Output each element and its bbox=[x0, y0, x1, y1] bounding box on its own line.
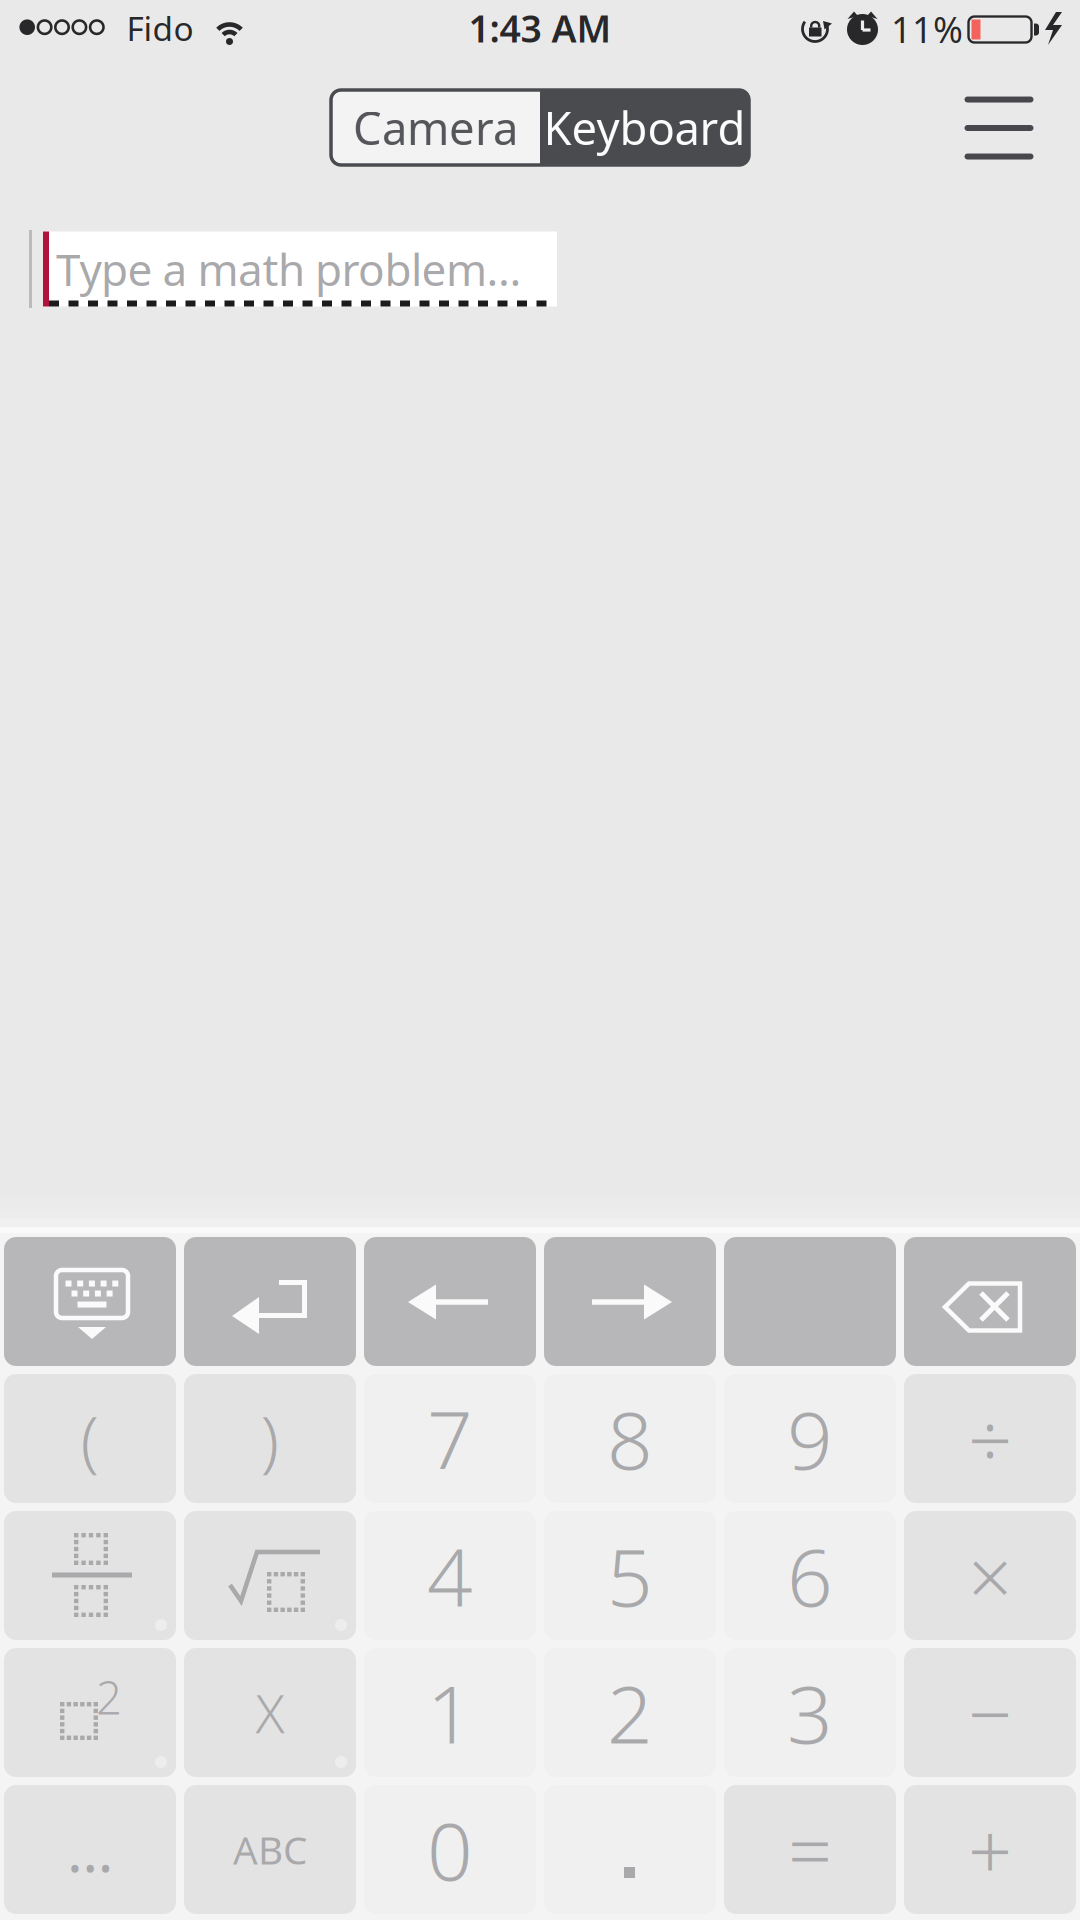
staticText: Camera bbox=[353, 97, 518, 158]
button[interactable]: − bbox=[904, 1648, 1076, 1777]
button[interactable]: Keyboard bbox=[540, 90, 749, 165]
staticText: ABC bbox=[233, 1824, 307, 1875]
staticText: 7 bbox=[427, 1385, 473, 1492]
button[interactable]: ABC bbox=[184, 1785, 356, 1914]
staticText: 3 bbox=[787, 1659, 833, 1766]
staticText: 8 bbox=[607, 1385, 653, 1492]
staticText: Type a math problem… bbox=[56, 240, 521, 298]
button[interactable]: Delete bbox=[904, 1237, 1076, 1366]
button[interactable]: ( bbox=[4, 1374, 176, 1503]
staticText: 11% bbox=[891, 5, 963, 53]
staticText: × bbox=[968, 1524, 1012, 1627]
button[interactable]: 9 bbox=[724, 1374, 896, 1503]
button[interactable]: Square bbox=[4, 1648, 176, 1777]
button[interactable]: 7 bbox=[364, 1374, 536, 1503]
button[interactable]: 5 bbox=[544, 1511, 716, 1640]
staticText: ÷ bbox=[968, 1387, 1012, 1490]
button[interactable]: × bbox=[904, 1511, 1076, 1640]
button[interactable]: Space bbox=[724, 1237, 896, 1366]
button[interactable]: 0 bbox=[364, 1785, 536, 1914]
staticText: … bbox=[67, 1810, 113, 1888]
button[interactable]: Hide keyboard bbox=[4, 1237, 176, 1366]
button[interactable]: Decimal point bbox=[544, 1785, 716, 1914]
button[interactable]: Return bbox=[184, 1237, 356, 1366]
button[interactable]: … bbox=[4, 1785, 176, 1914]
staticText: 1:43 AM bbox=[468, 3, 611, 53]
button[interactable]: Square root bbox=[184, 1511, 356, 1640]
button[interactable]: Variable x bbox=[184, 1648, 356, 1777]
button[interactable]: ) bbox=[184, 1374, 356, 1503]
button[interactable]: Move right bbox=[544, 1237, 716, 1366]
button[interactable]: 4 bbox=[364, 1511, 536, 1640]
staticText: Fido bbox=[126, 6, 193, 50]
staticText: Keyboard bbox=[543, 97, 745, 158]
button[interactable]: = bbox=[724, 1785, 896, 1914]
button[interactable]: + bbox=[904, 1785, 1076, 1914]
staticText: ) bbox=[260, 1394, 279, 1483]
staticText: − bbox=[968, 1661, 1012, 1764]
staticText: 2 bbox=[607, 1659, 653, 1766]
staticText: = bbox=[788, 1798, 832, 1901]
button[interactable]: Fraction bbox=[4, 1511, 176, 1640]
staticText: 0 bbox=[427, 1796, 473, 1903]
button[interactable]: Camera bbox=[331, 90, 540, 165]
staticText: 9 bbox=[787, 1385, 833, 1492]
staticText: 5 bbox=[607, 1522, 653, 1629]
button[interactable]: 2 bbox=[544, 1648, 716, 1777]
staticText: 4 bbox=[427, 1522, 473, 1629]
staticText: ( bbox=[80, 1394, 99, 1483]
staticText: 1 bbox=[427, 1659, 473, 1766]
staticText: X bbox=[255, 1677, 284, 1748]
button[interactable]: Move left bbox=[364, 1237, 536, 1366]
button[interactable]: 6 bbox=[724, 1511, 896, 1640]
staticText: + bbox=[968, 1798, 1012, 1901]
staticText: 2 bbox=[96, 1667, 122, 1727]
button[interactable]: ÷ bbox=[904, 1374, 1076, 1503]
button[interactable]: 8 bbox=[544, 1374, 716, 1503]
button[interactable]: 1 bbox=[364, 1648, 536, 1777]
button[interactable]: Menu bbox=[954, 83, 1044, 173]
staticText: 6 bbox=[787, 1522, 833, 1629]
button[interactable]: 3 bbox=[724, 1648, 896, 1777]
